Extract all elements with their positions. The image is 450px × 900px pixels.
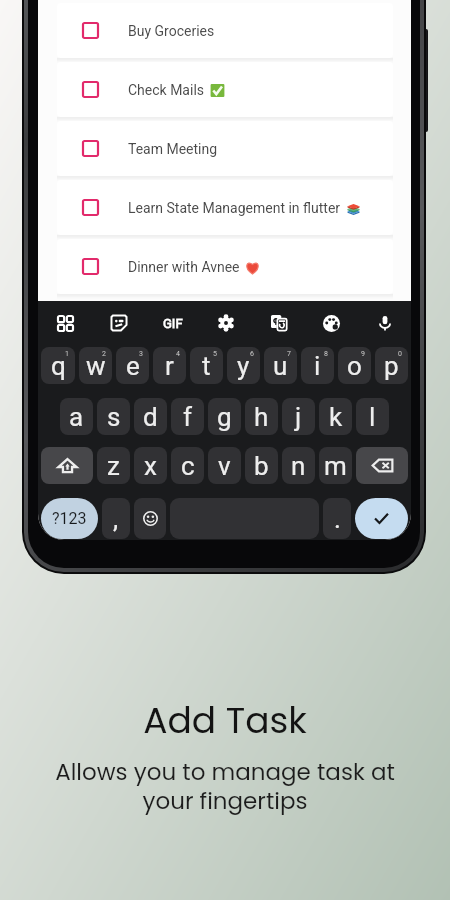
staticText: 3	[139, 350, 143, 358]
button[interactable]: l	[356, 398, 389, 435]
staticText: v	[218, 451, 231, 481]
staticText: t	[202, 351, 211, 381]
button[interactable]: q	[41, 347, 75, 384]
staticText: 4	[176, 350, 180, 358]
staticText: x	[144, 451, 157, 481]
button[interactable]: w	[79, 347, 112, 384]
staticText: u	[273, 351, 288, 381]
button[interactable]: j	[282, 398, 315, 435]
button[interactable]: Dinner with Avnee	[57, 239, 393, 294]
button[interactable]: y	[227, 347, 260, 384]
staticText: h	[254, 402, 269, 432]
staticText: e	[126, 351, 140, 381]
staticText: 6	[250, 350, 254, 358]
button[interactable]: m	[319, 447, 352, 484]
button[interactable]: translate	[252, 301, 305, 345]
button[interactable]: Team Meeting	[57, 121, 393, 176]
button[interactable]: Learn State Management in flutter	[57, 180, 393, 235]
button[interactable]: x	[134, 447, 167, 484]
button[interactable]: ?123	[41, 498, 98, 539]
staticText: r	[165, 351, 174, 381]
button[interactable]: d	[134, 398, 167, 435]
staticText: 1	[65, 350, 69, 358]
button[interactable]: o	[338, 347, 371, 384]
button[interactable]: k	[319, 398, 352, 435]
staticText: p	[384, 351, 399, 381]
staticText: m	[324, 451, 347, 481]
button[interactable]: palette	[305, 301, 358, 345]
staticText: d	[143, 402, 158, 432]
staticText: Check Mails	[128, 82, 205, 98]
button[interactable]: shift	[41, 447, 93, 484]
staticText: 2	[102, 350, 106, 358]
button[interactable]: sticker	[92, 301, 146, 345]
staticText: .	[334, 504, 341, 534]
staticText: y	[237, 351, 250, 381]
button[interactable]: r	[153, 347, 186, 384]
button[interactable]: backspace	[356, 447, 408, 484]
staticText: k	[329, 402, 343, 432]
staticText: ?123	[52, 509, 87, 528]
button[interactable]: Enter	[355, 498, 408, 539]
button[interactable]: n	[282, 447, 315, 484]
staticText: GIF	[163, 316, 183, 331]
button[interactable]: gif	[146, 301, 199, 345]
button[interactable]: grid	[38, 301, 92, 345]
staticText: 5	[213, 350, 217, 358]
button[interactable]: emoji	[134, 498, 166, 539]
staticText: j	[295, 402, 302, 432]
staticText: c	[181, 451, 195, 481]
staticText: Buy Groceries	[128, 23, 215, 39]
button[interactable]: z	[97, 447, 130, 484]
staticText: i	[314, 351, 321, 381]
button[interactable]: a	[60, 398, 93, 435]
button[interactable]: t	[190, 347, 223, 384]
staticText: w	[86, 351, 106, 381]
staticText: o	[347, 351, 362, 381]
staticText: b	[254, 451, 269, 481]
button[interactable]: ,	[102, 498, 130, 539]
staticText: Add Task	[143, 695, 307, 745]
button[interactable]: u	[264, 347, 297, 384]
staticText: 0	[398, 350, 402, 358]
staticText: 8	[324, 350, 328, 358]
button[interactable]: i	[301, 347, 334, 384]
button[interactable]: .	[323, 498, 351, 539]
button[interactable]: mic	[358, 301, 411, 345]
staticText: q	[51, 351, 66, 381]
staticText: ,	[113, 504, 119, 534]
staticText: Allows you to manage task at your finger…	[55, 756, 395, 817]
button[interactable]: Check Mails	[57, 62, 393, 117]
staticText: Team Meeting	[128, 141, 218, 157]
staticText: s	[107, 402, 121, 432]
staticText: n	[291, 451, 306, 481]
staticText: Dinner with Avnee	[128, 259, 240, 275]
staticText: 7	[287, 350, 291, 358]
staticText: g	[217, 402, 232, 432]
staticText: 9	[361, 350, 365, 358]
button[interactable]: s	[97, 398, 130, 435]
button[interactable]: v	[208, 447, 241, 484]
button[interactable]: f	[171, 398, 204, 435]
staticText: a	[69, 402, 84, 432]
button[interactable]: g	[208, 398, 241, 435]
button[interactable]: Buy Groceries	[57, 3, 393, 58]
staticText: l	[369, 402, 376, 432]
button[interactable]: gear	[199, 301, 252, 345]
button[interactable]: c	[171, 447, 204, 484]
staticText: z	[107, 451, 120, 481]
button[interactable]: b	[245, 447, 278, 484]
staticText: f	[183, 402, 193, 432]
button[interactable]: h	[245, 398, 278, 435]
button[interactable]: e	[116, 347, 149, 384]
staticText: Learn State Management in flutter	[128, 200, 341, 216]
button[interactable]: p	[375, 347, 408, 384]
